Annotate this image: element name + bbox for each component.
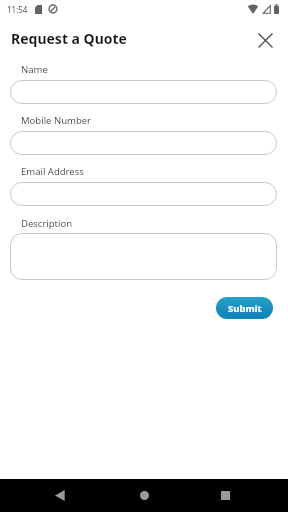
staticText: Mobile Number: [21, 114, 92, 127]
staticText: Name: [21, 63, 48, 76]
staticText: Submit: [228, 302, 262, 315]
staticText: Description: [21, 217, 73, 230]
button[interactable]: [10, 80, 277, 104]
button[interactable]: Submit: [216, 297, 273, 319]
staticText: Email Address: [21, 165, 84, 178]
staticText: Request a Quote: [11, 29, 127, 48]
button[interactable]: [140, 491, 149, 500]
staticText: 11:54: [7, 4, 28, 15]
button[interactable]: [258, 33, 273, 48]
button[interactable]: [10, 233, 277, 280]
button[interactable]: [10, 182, 277, 206]
button[interactable]: [10, 131, 277, 155]
button[interactable]: [55, 490, 66, 501]
